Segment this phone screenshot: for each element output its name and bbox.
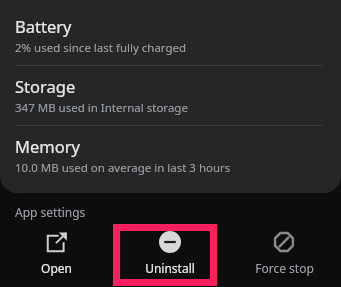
staticText: Storage	[15, 75, 76, 97]
staticText: Memory	[15, 135, 80, 157]
staticText: 10.0 MB used on average in last 3 hours	[15, 160, 231, 176]
staticText: Open	[41, 260, 72, 276]
staticText: 347 MB used in Internal storage	[15, 100, 188, 116]
staticText: Uninstall	[145, 260, 195, 276]
button[interactable]: Open	[0, 227, 113, 280]
button[interactable]: Battery	[0, 6, 341, 65]
staticText: App settings	[15, 204, 86, 220]
button[interactable]: Uninstall	[113, 227, 227, 280]
staticText: Battery	[15, 15, 72, 37]
button[interactable]: Force stop	[227, 227, 341, 280]
staticText: 2% used since last fully charged	[15, 40, 187, 56]
button[interactable]: Storage	[0, 66, 341, 125]
button[interactable]: Memory	[0, 126, 341, 185]
staticText: Force stop	[255, 260, 314, 276]
